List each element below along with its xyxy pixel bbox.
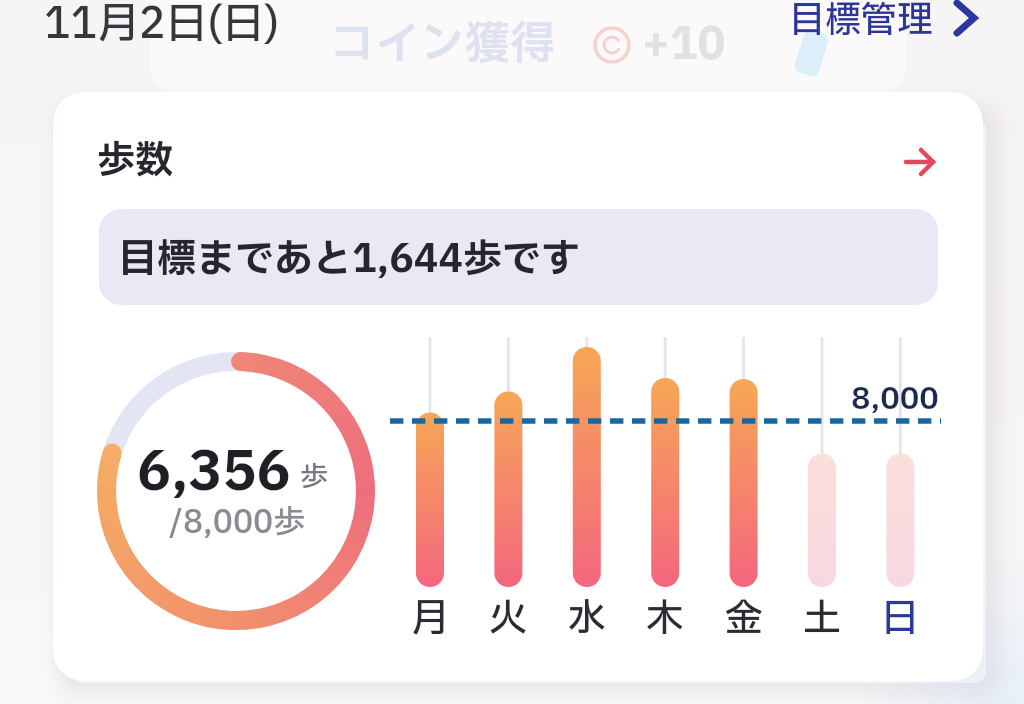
staticText: 8,000 [851, 376, 939, 422]
staticText: 11月2日(日) [44, 0, 280, 56]
button[interactable] [899, 144, 943, 180]
button[interactable]: 目標まであと1,644歩です [99, 209, 938, 305]
staticText: 火 [489, 591, 528, 639]
staticText: 目標管理 [789, 0, 934, 42]
staticText: 水 [568, 591, 607, 639]
staticText: 目標まであと1,644歩です [118, 231, 580, 289]
staticText: 木 [646, 591, 685, 639]
staticText: 金 [725, 591, 764, 639]
staticText: 歩 [300, 456, 329, 498]
staticText: 月 [411, 591, 450, 639]
staticText: 歩数 [97, 133, 174, 190]
staticText: 日 [881, 591, 920, 639]
button[interactable]: 目標管理 [789, 0, 978, 42]
staticText: コイン獲得 [330, 11, 556, 78]
staticText: 6,356 [137, 433, 291, 514]
staticText: /8,000歩 [169, 499, 306, 547]
staticText: +10 [642, 12, 726, 78]
button[interactable]: 歩数 [53, 92, 983, 681]
staticText: 土 [803, 591, 842, 639]
